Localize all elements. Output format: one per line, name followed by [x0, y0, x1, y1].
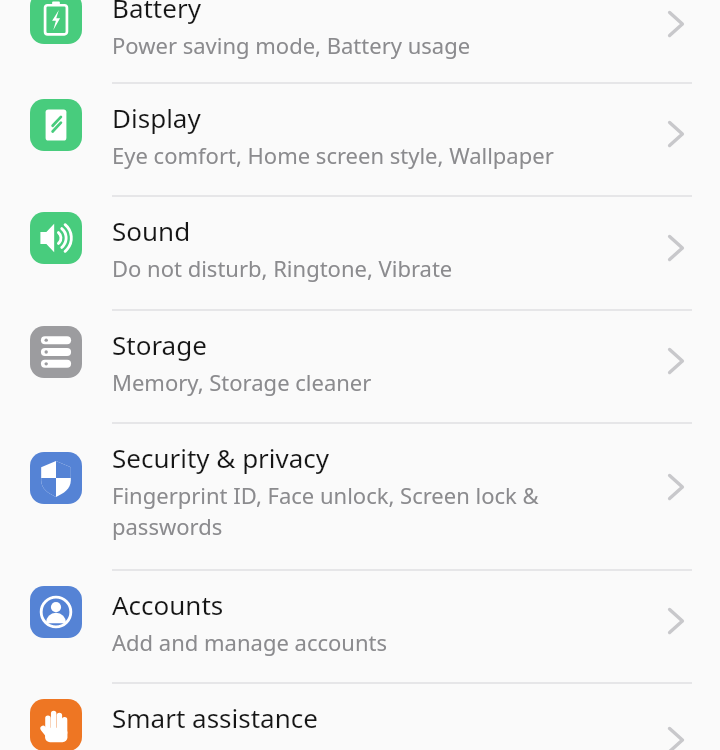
staticText: Power saving mode, Battery usage: [112, 30, 471, 60]
button[interactable]: Smart assistance: [0, 684, 720, 750]
button[interactable]: Battery: [0, 0, 720, 84]
button[interactable]: Security & privacy: [0, 424, 720, 571]
button[interactable]: Accounts: [0, 571, 720, 684]
button[interactable]: Display: [0, 84, 720, 197]
staticText: Eye comfort, Home screen style, Wallpape…: [112, 140, 554, 170]
staticText: Storage: [112, 327, 207, 362]
button[interactable]: Storage: [0, 311, 720, 424]
staticText: Security & privacy: [112, 440, 330, 475]
staticText: Battery: [112, 0, 201, 25]
staticText: Add and manage accounts: [112, 627, 387, 657]
staticText: Sound: [112, 213, 191, 248]
staticText: Smart assistance: [112, 700, 318, 735]
staticText: Do not disturb, Ringtone, Vibrate: [112, 253, 453, 283]
staticText: Accounts: [112, 587, 224, 622]
button[interactable]: Sound: [0, 197, 720, 311]
staticText: Memory, Storage cleaner: [112, 367, 372, 397]
staticText: Display: [112, 100, 201, 135]
staticText: Fingerprint ID, Face unlock, Screen lock…: [112, 480, 642, 542]
